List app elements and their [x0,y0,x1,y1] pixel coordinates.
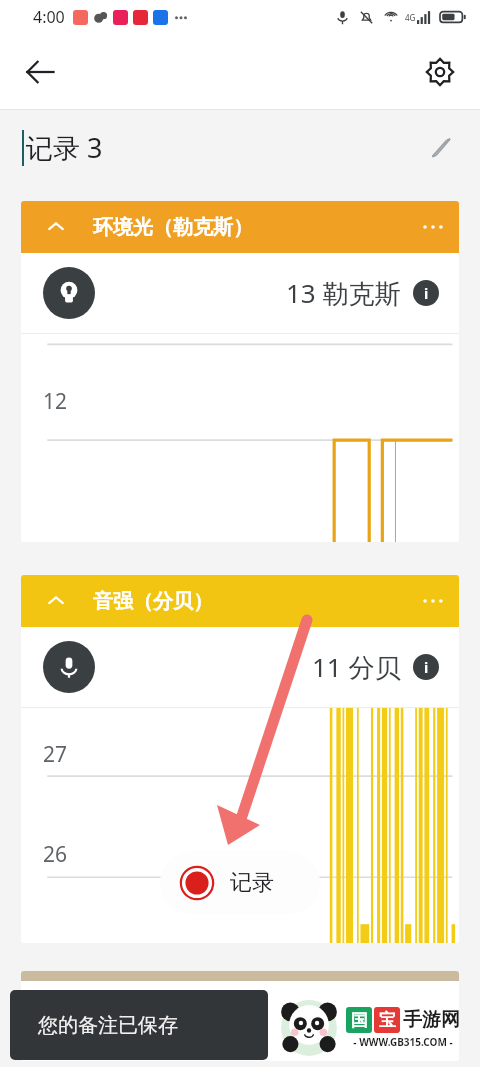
staticText: 环境光（勒克斯） [93,215,253,240]
button[interactable]: More options [411,205,455,249]
staticText: 12 [43,387,68,416]
button[interactable]: Info [413,280,439,306]
staticText: 4:00 [33,6,65,28]
staticText: 11 分贝 [312,649,401,685]
button[interactable]: Edit [418,126,462,170]
staticText: 记录 3 [26,129,103,166]
staticText: 27 [43,740,68,769]
staticText: 国 [351,1010,368,1031]
button[interactable]: Info [413,654,439,680]
staticText: 4G [405,12,416,23]
button[interactable]: More options [411,579,455,623]
staticText: 记录 [230,869,274,897]
button[interactable]: Settings [412,44,468,100]
button[interactable]: 记录 [160,851,320,915]
staticText: i [424,658,429,677]
staticText: 26 [43,840,68,869]
staticText: 13 勒克斯 [286,275,401,311]
button[interactable]: Back [12,44,68,100]
staticText: 宝 [379,1010,396,1031]
staticText: 您的备注已保存 [38,1013,178,1038]
staticText: i [424,284,429,303]
button[interactable]: 音强（分贝） [21,575,459,627]
staticText: 手游网 [403,1008,460,1032]
staticText: - WWW.GB315.COM - [353,1035,453,1049]
staticText: 音强（分贝） [93,589,213,614]
button[interactable]: 环境光（勒克斯） [21,201,459,253]
